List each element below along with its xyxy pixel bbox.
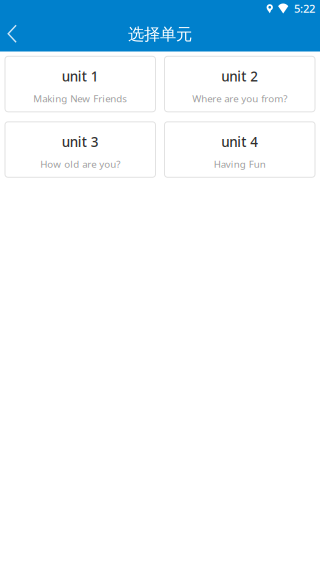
- staticText: unit 3: [62, 132, 99, 151]
- staticText: Where are you from?: [192, 92, 287, 105]
- staticText: Making New Friends: [33, 92, 127, 105]
- button[interactable]: unit 1: [5, 56, 155, 112]
- staticText: Having Fun: [214, 157, 266, 171]
- button[interactable]: Back: [0, 17, 29, 51]
- staticText: unit 1: [62, 67, 99, 85]
- staticText: unit 2: [221, 67, 258, 85]
- button[interactable]: unit 3: [5, 122, 155, 177]
- button[interactable]: unit 4: [164, 122, 315, 177]
- staticText: 选择单元: [128, 24, 192, 44]
- staticText: 5:22: [294, 1, 315, 16]
- staticText: How old are you?: [40, 157, 120, 171]
- staticText: unit 4: [221, 132, 258, 151]
- button[interactable]: unit 2: [164, 56, 315, 112]
